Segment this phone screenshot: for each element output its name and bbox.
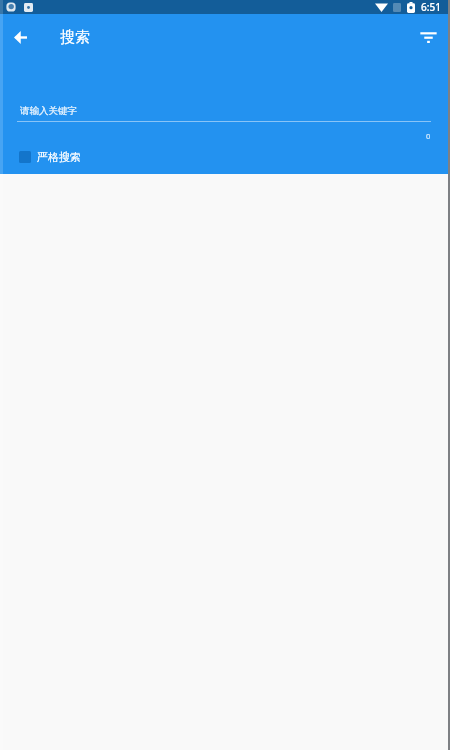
staticText: 搜索 — [60, 28, 90, 47]
button[interactable]: Filter — [408, 17, 448, 57]
button[interactable]: 严格搜索 — [19, 150, 81, 164]
staticText: 0 — [426, 131, 431, 141]
staticText: 严格搜索 — [37, 150, 81, 164]
staticText: 请输入关键字 — [20, 105, 77, 117]
staticText: 6:51 — [421, 0, 441, 14]
button[interactable]: Back — [0, 17, 40, 57]
